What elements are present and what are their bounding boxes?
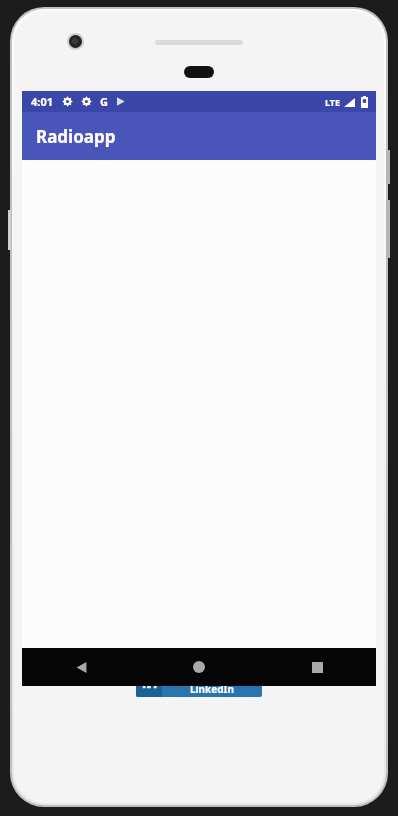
button[interactable]: Back: [57, 648, 105, 686]
staticText: LTE: [325, 96, 341, 108]
button[interactable]: Recent apps: [293, 648, 341, 686]
staticText: G: [100, 94, 108, 109]
staticText: Sign in with LinkedIn: [162, 668, 262, 696]
staticText: 4:01: [31, 94, 53, 109]
staticText: Radioapp: [36, 125, 116, 148]
button[interactable]: Sign in with LinkedIn: [136, 666, 262, 697]
button[interactable]: Home: [175, 648, 223, 686]
